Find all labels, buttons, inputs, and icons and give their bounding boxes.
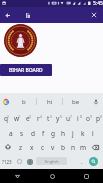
staticText: f (42, 129, 45, 138)
button[interactable]: Back (0, 8, 14, 22)
button[interactable]: h (58, 126, 68, 140)
staticText: l (92, 129, 94, 138)
button[interactable]: . (76, 154, 87, 169)
button[interactable]: g (48, 126, 58, 140)
staticText: s (20, 129, 24, 138)
staticText: q (4, 114, 8, 123)
button[interactable]: f (38, 126, 48, 140)
staticText: English (45, 159, 59, 164)
button[interactable]: Emoji (14, 154, 24, 169)
button[interactable]: b (11, 93, 36, 110)
button[interactable]: n (68, 140, 78, 154)
staticText: b (22, 98, 26, 106)
button[interactable]: 0 (93, 110, 103, 126)
staticText: r (37, 114, 40, 123)
button[interactable]: Change language (24, 154, 35, 169)
staticText: o (86, 114, 90, 123)
staticText: y (56, 114, 60, 123)
button[interactable]: Back (0, 169, 35, 183)
staticText: 8 (80, 114, 83, 119)
button[interactable]: Recent apps (69, 169, 103, 183)
button[interactable]: s (16, 126, 27, 140)
staticText: g (51, 129, 55, 138)
staticText: n (71, 143, 76, 152)
staticText: . (81, 158, 83, 166)
button[interactable]: b (58, 140, 68, 154)
staticText: v (51, 143, 55, 152)
button[interactable]: 5 (43, 110, 53, 126)
staticText: 1 (7, 114, 10, 119)
button[interactable]: English (36, 157, 67, 165)
button[interactable]: Search (89, 157, 98, 166)
button[interactable]: hi (37, 93, 62, 110)
staticText: 6 (60, 114, 63, 119)
button[interactable]: 3 (22, 110, 33, 126)
button[interactable]: Voice input (88, 93, 103, 110)
button[interactable]: x (26, 140, 37, 154)
staticText: c (41, 143, 45, 152)
button[interactable]: v (48, 140, 58, 154)
staticText: k (81, 129, 85, 138)
staticText: hi (47, 98, 53, 106)
staticText: 7 (70, 114, 73, 119)
button[interactable]: 9 (83, 110, 93, 126)
staticText: 5 (50, 114, 53, 119)
staticText: h (61, 129, 66, 138)
staticText: be (72, 98, 80, 106)
staticText: p (96, 114, 100, 123)
button[interactable]: 6 (53, 110, 63, 126)
button[interactable]: m (78, 140, 88, 154)
button[interactable]: Home (35, 169, 69, 183)
button[interactable]: Shift (0, 140, 15, 154)
staticText: u (66, 114, 71, 123)
staticText: 4 (40, 114, 43, 119)
button[interactable]: Google (1, 97, 10, 106)
staticText: 3 (29, 114, 32, 119)
button[interactable]: z (15, 140, 26, 154)
staticText: e (26, 114, 30, 123)
button[interactable]: j (68, 126, 78, 140)
staticText: 2 (18, 114, 21, 119)
button[interactable]: be (63, 93, 88, 110)
staticText: ?123 (2, 159, 12, 165)
staticText: x (30, 143, 34, 152)
staticText: w (14, 114, 20, 123)
button[interactable]: App icon (21, 9, 34, 22)
staticText: BIHAR BOARD (9, 67, 43, 74)
button[interactable]: a (5, 126, 16, 140)
staticText: m (80, 143, 87, 152)
staticText: t (47, 114, 50, 123)
staticText: j (72, 129, 74, 138)
staticText: d (31, 129, 35, 138)
button[interactable]: 7 (63, 110, 73, 126)
staticText: 9 (90, 114, 93, 119)
button[interactable]: 4 (33, 110, 43, 126)
button[interactable]: 2 (11, 110, 22, 126)
button[interactable]: l (88, 126, 98, 140)
button[interactable]: c (37, 140, 48, 154)
staticText: i (77, 114, 79, 123)
staticText: 0 (100, 114, 103, 119)
button[interactable]: 1 (0, 110, 11, 126)
staticText: a (9, 129, 13, 138)
button[interactable]: 8 (73, 110, 83, 126)
staticText: z (19, 143, 23, 152)
button[interactable]: k (78, 126, 88, 140)
staticText: 5:45 (93, 0, 103, 7)
button[interactable]: Close (87, 8, 101, 22)
staticText: b (61, 143, 65, 152)
button[interactable]: Backspace (88, 140, 103, 154)
button[interactable]: d (27, 126, 38, 140)
button[interactable]: BIHAR BOARD (0, 64, 52, 76)
button[interactable]: ?123 (0, 154, 13, 169)
